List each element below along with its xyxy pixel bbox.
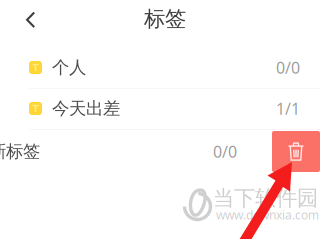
staticText: 当下软件园 — [213, 185, 318, 211]
button[interactable]: Back — [11, 3, 51, 37]
button[interactable]: 新标签 — [0, 131, 261, 172]
staticText: www.downxia.com — [216, 207, 319, 223]
staticText: 0/0 — [213, 141, 237, 162]
button[interactable]: 今天出差 — [0, 88, 320, 129]
button[interactable]: Delete — [272, 131, 320, 172]
button[interactable]: 个人 — [0, 47, 320, 88]
staticText: 1/1 — [276, 98, 300, 119]
staticText: 个人 — [52, 57, 86, 78]
staticText: 标签 — [144, 6, 186, 32]
staticText: 今天出差 — [52, 98, 120, 119]
staticText: 0/0 — [276, 57, 300, 78]
staticText: 新标签 — [0, 141, 40, 162]
